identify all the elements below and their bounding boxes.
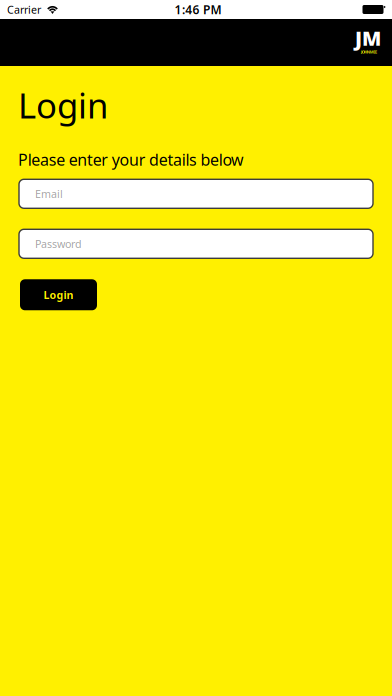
button[interactable]: John Mee home [354,28,392,56]
staticText: JOHN MEE [361,49,377,54]
staticText: JM [355,25,381,51]
staticText: Carrier [7,2,41,17]
button[interactable]: Email [19,179,373,208]
staticText: 1:46 PM [175,1,221,17]
staticText: Email [35,187,63,201]
staticText: Please enter your details below [18,149,244,170]
staticText: Password [35,237,82,251]
button[interactable]: Login [20,279,97,310]
staticText: Login [43,288,73,302]
staticText: Login [18,82,108,128]
button[interactable]: Password [19,229,373,258]
